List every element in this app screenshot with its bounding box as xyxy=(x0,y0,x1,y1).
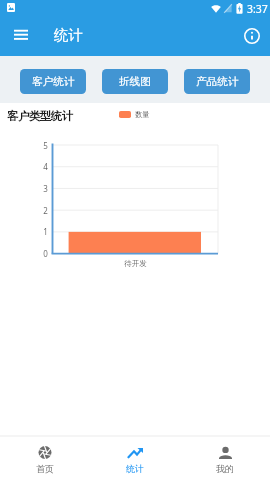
button[interactable]: 我的 xyxy=(180,437,270,480)
staticText: 5 xyxy=(43,140,48,151)
button[interactable]: 统计 xyxy=(90,437,180,480)
staticText: 0 xyxy=(43,248,48,259)
staticText: 统计 xyxy=(54,26,83,44)
staticText: 统计 xyxy=(126,463,144,474)
staticText: 首页 xyxy=(36,463,54,474)
staticText: 1 xyxy=(43,226,48,237)
button[interactable]: 折线图 xyxy=(102,69,168,94)
staticText: 客户类型统计 xyxy=(7,109,73,123)
staticText: 产品统计 xyxy=(196,75,239,88)
staticText: 3:37 xyxy=(247,2,268,16)
staticText: 折线图 xyxy=(119,75,151,88)
button[interactable]: 产品统计 xyxy=(184,69,250,94)
button[interactable]: Info xyxy=(240,24,263,47)
staticText: 我的 xyxy=(216,463,234,474)
staticText: 待开发 xyxy=(124,259,147,268)
button[interactable]: 客户统计 xyxy=(20,69,86,94)
staticText: 2 xyxy=(43,205,48,216)
button[interactable]: Menu xyxy=(9,23,33,47)
staticText: 客户统计 xyxy=(32,75,75,88)
button[interactable]: 首页 xyxy=(0,437,90,480)
staticText: 3 xyxy=(43,183,48,194)
staticText: 数量 xyxy=(135,110,150,119)
staticText: 4 xyxy=(43,161,48,172)
